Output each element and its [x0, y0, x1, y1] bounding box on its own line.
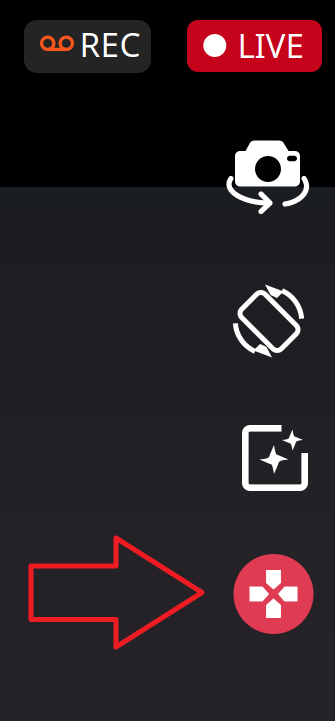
button[interactable]: LIVE	[187, 20, 322, 72]
button[interactable]: Effects	[242, 425, 308, 491]
button[interactable]: Move controls	[233, 554, 313, 634]
button[interactable]: Rotate screen	[231, 284, 305, 358]
button[interactable]: REC	[24, 20, 151, 73]
button[interactable]: Switch camera	[224, 140, 310, 210]
staticText: LIVE	[237, 23, 304, 67]
staticText: REC	[79, 22, 140, 66]
